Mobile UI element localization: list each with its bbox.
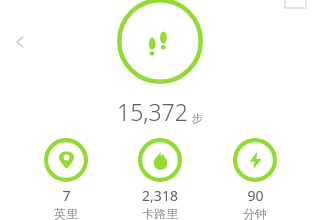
staticText: 英里 (54, 206, 78, 220)
staticText: 90 (247, 186, 264, 205)
button[interactable]: Calories (115, 138, 205, 220)
button[interactable]: Active minutes (210, 138, 300, 220)
staticText: 分钟 (243, 206, 267, 220)
staticText: 卡路里 (142, 206, 178, 220)
staticText: 2,318 (142, 186, 178, 205)
staticText: 步 (192, 111, 203, 125)
button[interactable]: Steps (117, 0, 203, 84)
staticText: 15,372 (117, 96, 188, 127)
button[interactable]: Back (6, 28, 34, 56)
staticText: 7 (62, 186, 71, 205)
button[interactable]: Distance (21, 138, 111, 220)
